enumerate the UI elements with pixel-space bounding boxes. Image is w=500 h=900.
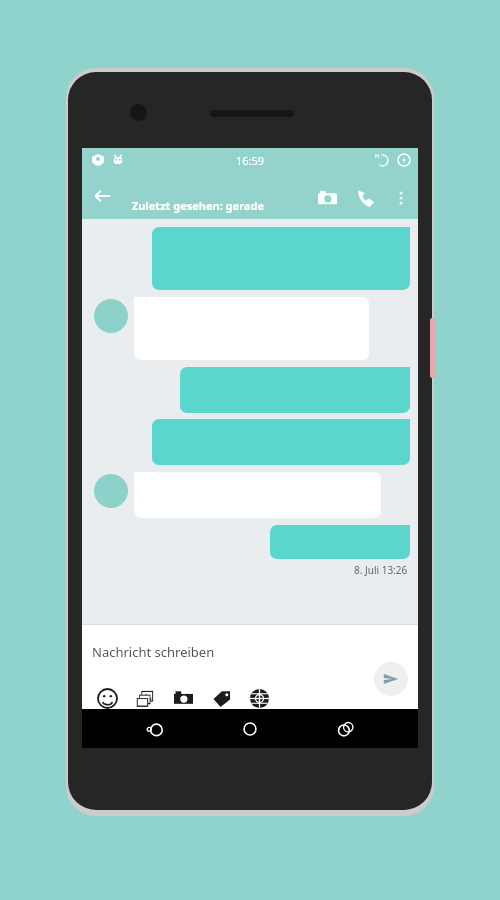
staticText: H	[375, 152, 380, 160]
button[interactable]	[152, 227, 410, 290]
button[interactable]: Recents	[323, 709, 367, 748]
button[interactable]	[180, 367, 410, 413]
button[interactable]: Sticker	[202, 679, 240, 717]
button[interactable]: Send	[374, 662, 408, 696]
button[interactable]: Emoji	[88, 679, 126, 717]
button[interactable]: Camera	[164, 679, 202, 717]
button[interactable]	[152, 419, 410, 465]
staticText: 8. Juli 13:26	[354, 563, 408, 577]
button[interactable]	[270, 525, 410, 559]
button[interactable]: Camera	[308, 179, 346, 217]
button[interactable]: Web	[240, 679, 278, 717]
button[interactable]: Gallery	[126, 679, 164, 717]
staticText: Nachricht schreiben	[92, 643, 215, 661]
button[interactable]: Home	[228, 709, 272, 748]
staticText: Zuletzt gesehen: gerade	[132, 198, 264, 213]
button[interactable]: Contact avatar	[94, 299, 128, 333]
button[interactable]: Contact avatar	[94, 474, 128, 508]
staticText: 16:59	[236, 153, 265, 168]
button[interactable]: Back	[82, 176, 122, 216]
button[interactable]: Back	[133, 709, 177, 748]
button[interactable]: More options	[384, 181, 418, 215]
button[interactable]: Call	[346, 179, 384, 217]
